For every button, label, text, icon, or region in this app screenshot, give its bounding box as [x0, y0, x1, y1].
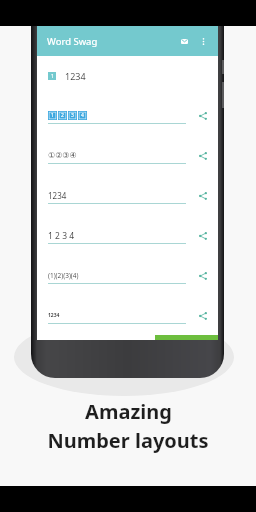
button[interactable]: 1 2 3 4 — [37, 216, 218, 256]
staticText: Number layouts — [47, 427, 209, 454]
staticText: 4 — [81, 112, 84, 119]
button[interactable]: Share — [195, 308, 211, 324]
staticText: 1234 — [48, 312, 60, 319]
button[interactable]: Share — [195, 108, 211, 124]
staticText: 1 2 3 4 — [48, 230, 75, 242]
staticText: 1234 — [65, 70, 86, 82]
button[interactable]: Share — [195, 148, 211, 164]
button[interactable]: 1 — [37, 96, 218, 136]
staticText: 1 — [51, 73, 54, 80]
button[interactable]: (1)(2)(3)(4) — [37, 256, 218, 296]
button[interactable]: 1234 — [37, 176, 218, 216]
staticText: 1234 — [48, 190, 67, 201]
button[interactable]: Share — [195, 228, 211, 244]
staticText: Amazing — [85, 398, 172, 425]
button[interactable]: 1234 — [37, 296, 218, 336]
staticText: 2 — [61, 112, 64, 119]
staticText: 1 — [51, 112, 54, 119]
button[interactable]: More options — [196, 34, 211, 49]
staticText: 3 — [71, 112, 74, 119]
button[interactable]: 1 — [37, 56, 218, 96]
staticText: Word Swag — [47, 35, 98, 48]
button[interactable]: Share — [195, 268, 211, 284]
button[interactable]: Mail — [177, 34, 192, 49]
staticText: ①②③④ — [48, 151, 77, 160]
staticText: (1)(2)(3)(4) — [48, 271, 79, 280]
button[interactable]: ①②③④ — [37, 136, 218, 176]
button[interactable]: Share — [195, 188, 211, 204]
